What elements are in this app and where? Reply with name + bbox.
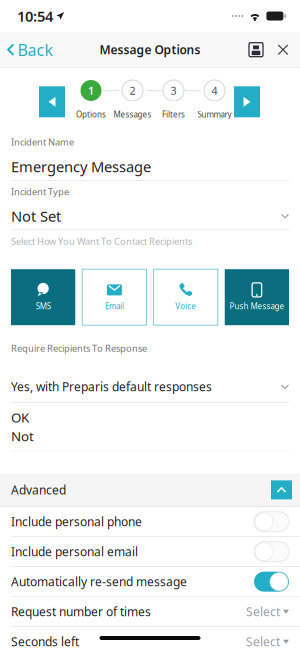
staticText: Summary xyxy=(197,109,231,120)
button[interactable]: Include personal phone xyxy=(254,512,289,532)
staticText: Messages xyxy=(113,109,151,120)
staticText: Incident Name xyxy=(11,136,74,148)
staticText: 2 xyxy=(129,83,135,98)
staticText: Select How You Want To Contact Recipient… xyxy=(11,235,192,247)
staticText: Message Options xyxy=(99,42,200,58)
button[interactable]: Select xyxy=(246,604,289,620)
staticText: OK xyxy=(11,409,29,426)
button[interactable]: Previous step xyxy=(39,82,65,117)
staticText: Select xyxy=(246,604,280,620)
staticText: Seconds left xyxy=(11,634,79,649)
staticText: Request number of times xyxy=(11,604,151,620)
staticText: Automatically re-send message xyxy=(11,574,187,590)
button[interactable]: Automatically re-send message xyxy=(254,572,289,592)
button[interactable]: Push Message xyxy=(225,269,289,325)
button[interactable]: Select xyxy=(246,634,289,649)
button[interactable]: Include personal email xyxy=(254,542,289,562)
staticText: Voice xyxy=(175,301,196,311)
button[interactable]: Email xyxy=(82,269,146,325)
staticText: Select xyxy=(246,634,280,649)
staticText: Advanced xyxy=(11,482,66,498)
staticText: Not xyxy=(11,427,34,445)
button[interactable]: Next step xyxy=(234,82,260,117)
staticText: Include personal email xyxy=(11,544,138,560)
staticText: Email xyxy=(105,301,124,311)
staticText: 10:54 xyxy=(17,6,53,26)
button[interactable]: Save xyxy=(242,34,270,66)
staticText: SMS xyxy=(36,301,51,311)
staticText: 4 xyxy=(211,83,217,98)
staticText: Emergency Message xyxy=(11,157,151,176)
staticText: Incident Type xyxy=(11,185,69,198)
button[interactable]: Voice xyxy=(153,269,218,325)
staticText: Yes, with Preparis default responses xyxy=(11,379,212,395)
staticText: Back xyxy=(17,39,53,60)
staticText: Options xyxy=(76,109,106,120)
staticText: Not Set xyxy=(11,206,61,226)
button[interactable]: Back xyxy=(0,34,61,66)
staticText: Require Recipients To Response xyxy=(11,342,147,354)
staticText: Filters xyxy=(162,109,185,120)
staticText: Include personal phone xyxy=(11,514,142,530)
button[interactable]: Collapse advanced xyxy=(271,480,292,499)
staticText: Push Message xyxy=(229,301,284,311)
button[interactable]: Close xyxy=(270,34,296,66)
staticText: 1 xyxy=(88,83,94,98)
button[interactable]: SMS xyxy=(11,269,75,325)
staticText: 3 xyxy=(170,83,176,98)
